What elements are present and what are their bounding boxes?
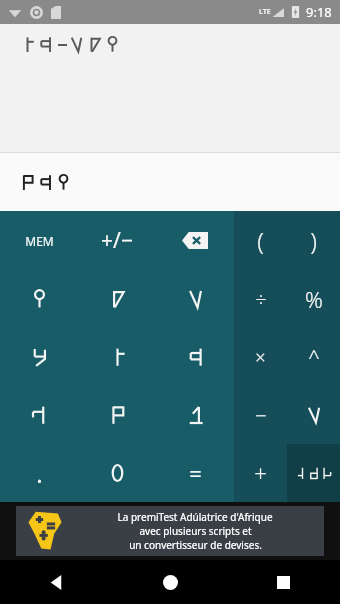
staticText: MEM [25,233,54,249]
staticText: + [254,458,267,488]
button[interactable] [0,153,340,211]
staticText: % [305,284,323,314]
button[interactable]: × [234,328,287,386]
button[interactable]: digit 9 [156,386,234,444]
button[interactable]: − [234,386,287,444]
button[interactable]: + [234,444,287,502]
button[interactable]: digit 6 [156,328,234,386]
button[interactable]: Backspace [156,211,234,270]
staticText: ( [257,224,264,257]
button[interactable]: ) [287,211,340,270]
button[interactable]: Convert [287,444,340,502]
button[interactable]: digit 5 [78,328,156,386]
staticText: un convertisseur de devises. [129,538,262,552]
button[interactable]: ÷ [234,270,287,328]
staticText: × [255,345,266,370]
button[interactable]: digit 0 [78,444,156,502]
button[interactable]: Back [0,560,114,604]
button[interactable]: Home [114,560,227,604]
staticText: ÷ [255,286,267,313]
button[interactable]: digit 2 [78,270,156,328]
button[interactable]: digit glyph [287,386,340,444]
button[interactable]: digit 3 [156,270,234,328]
button[interactable]: La premiTest Adúlatrice d'Afrique [16,506,324,556]
button[interactable]: MEM [0,211,78,270]
button[interactable]: . [0,444,78,502]
button[interactable]: digit 1 [0,270,78,328]
button[interactable]: = [156,444,234,502]
button[interactable]: digit 4 [0,328,78,386]
button[interactable]: Recents [227,560,340,604]
staticText: = [189,458,202,488]
staticText: ^ [308,344,320,371]
button[interactable]: digit 8 [78,386,156,444]
button[interactable]: ( [234,211,287,270]
button[interactable] [0,24,340,152]
staticText: ) [310,224,317,257]
button[interactable]: % [287,270,340,328]
staticText: LTE [259,7,271,17]
button[interactable]: digit 7 [0,386,78,444]
staticText: +/− [101,226,133,255]
staticText: avec plusieurs scripts et [139,524,252,538]
staticText: La premiTest Adúlatrice d'Afrique [117,510,273,524]
button[interactable]: ^ [287,328,340,386]
staticText: 9:18 [306,3,332,21]
staticText: − [255,402,267,429]
staticText: . [36,457,43,490]
button[interactable]: +/− [78,211,156,270]
